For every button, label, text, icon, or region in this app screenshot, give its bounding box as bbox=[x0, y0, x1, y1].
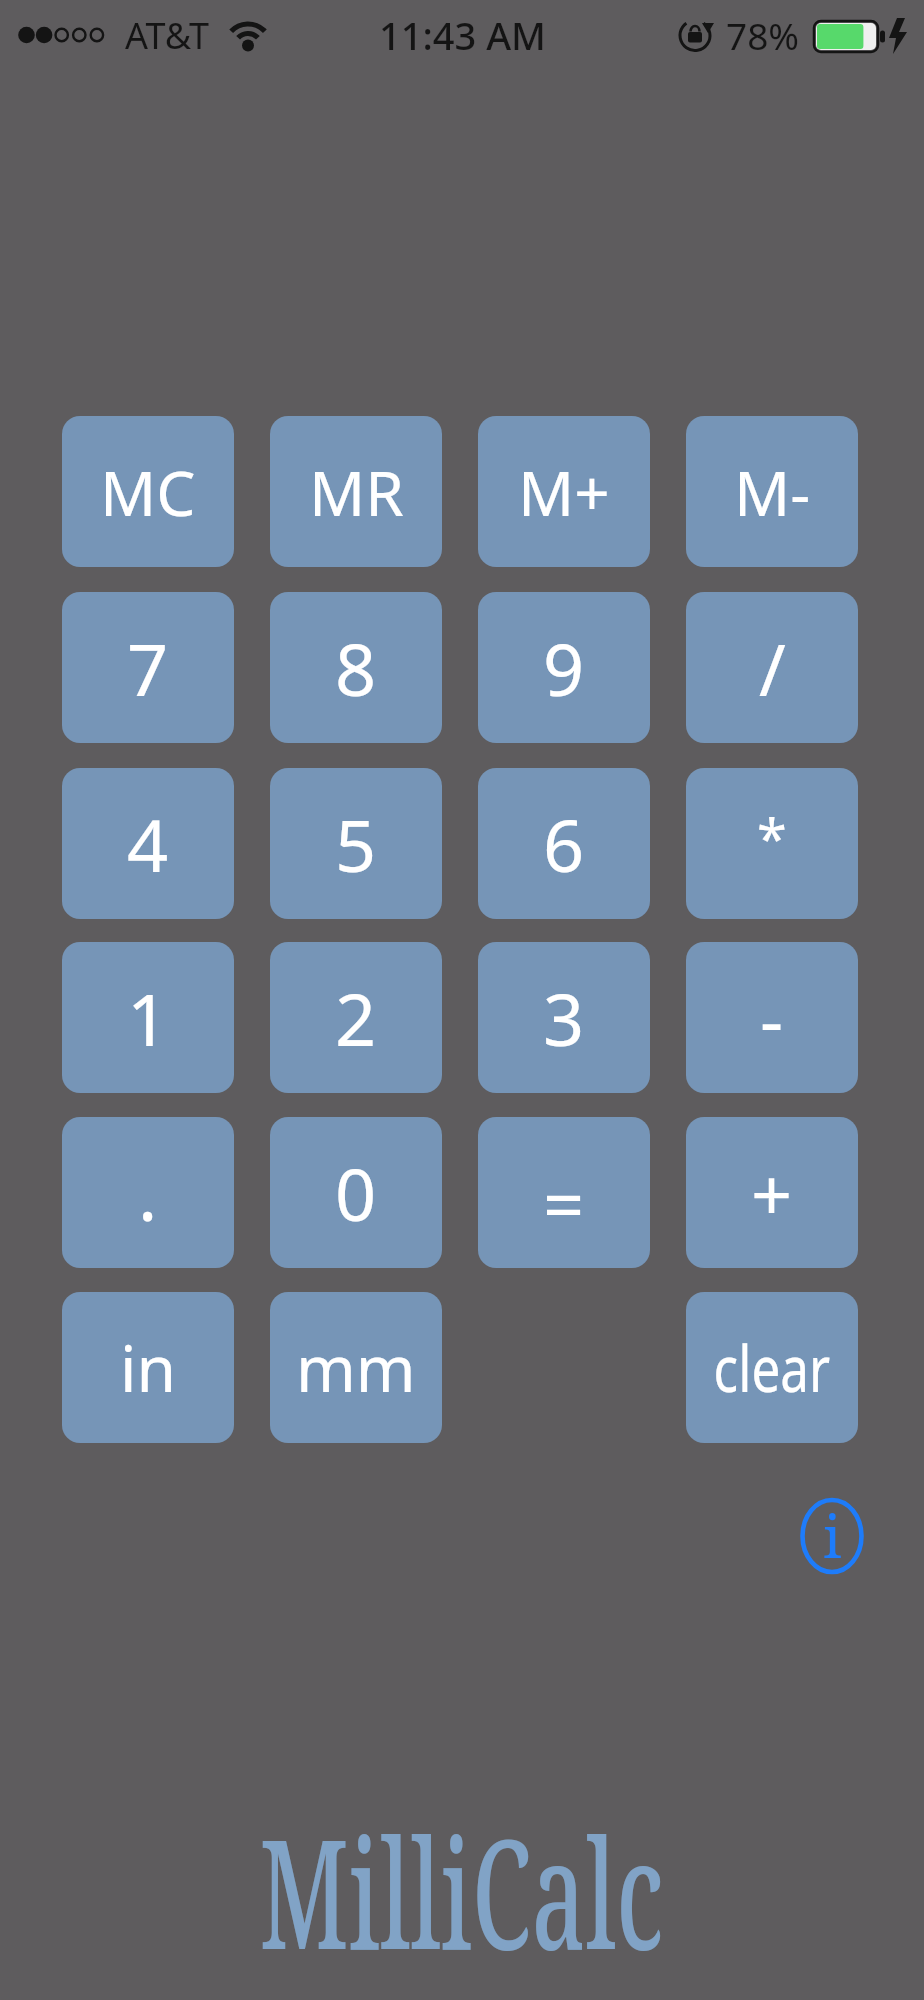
button[interactable]: MR bbox=[270, 416, 442, 567]
staticText: 11:43 AM bbox=[379, 9, 546, 61]
button[interactable]: . bbox=[62, 1117, 234, 1268]
button[interactable]: 8 bbox=[270, 592, 442, 743]
button[interactable]: 6 bbox=[478, 768, 650, 919]
staticText: 6 bbox=[543, 795, 585, 893]
staticText: M- bbox=[734, 450, 811, 534]
button[interactable]: 2 bbox=[270, 942, 442, 1093]
staticText: 7 bbox=[127, 619, 169, 717]
staticText: mm bbox=[296, 1324, 416, 1411]
staticText: 8 bbox=[335, 619, 377, 717]
staticText: 4 bbox=[127, 795, 169, 893]
staticText: in bbox=[120, 1324, 177, 1411]
button[interactable]: 9 bbox=[478, 592, 650, 743]
staticText: 9 bbox=[543, 619, 585, 717]
staticText: 0 bbox=[335, 1144, 377, 1242]
staticText: 3 bbox=[543, 969, 585, 1067]
staticText: . bbox=[138, 1144, 158, 1242]
button[interactable]: i bbox=[787, 1491, 877, 1581]
staticText: AT&T bbox=[125, 11, 209, 60]
staticText: - bbox=[760, 969, 784, 1067]
button[interactable]: in bbox=[62, 1292, 234, 1443]
button[interactable]: 0 bbox=[270, 1117, 442, 1268]
staticText: 5 bbox=[335, 795, 377, 893]
button[interactable]: - bbox=[686, 942, 858, 1093]
button[interactable]: + bbox=[686, 1117, 858, 1268]
staticText: MC bbox=[100, 450, 196, 534]
button[interactable]: clear bbox=[686, 1292, 858, 1443]
button[interactable]: MC bbox=[62, 416, 234, 567]
staticText: MR bbox=[309, 450, 404, 534]
button[interactable]: / bbox=[686, 592, 858, 743]
staticText: M+ bbox=[518, 450, 610, 534]
staticText: 78% bbox=[726, 10, 800, 60]
staticText: i bbox=[823, 1496, 842, 1575]
staticText: + bbox=[751, 1144, 793, 1242]
staticText: MilliCalc bbox=[259, 1787, 664, 1994]
staticText: 1 bbox=[127, 969, 169, 1067]
button[interactable]: 5 bbox=[270, 768, 442, 919]
button[interactable]: = bbox=[478, 1117, 650, 1268]
staticText: = bbox=[543, 1154, 585, 1252]
staticText: 2 bbox=[335, 969, 377, 1067]
button[interactable]: M+ bbox=[478, 416, 650, 567]
staticText: clear bbox=[714, 1324, 830, 1411]
button[interactable]: 4 bbox=[62, 768, 234, 919]
button[interactable]: * bbox=[686, 768, 858, 919]
button[interactable]: 7 bbox=[62, 592, 234, 743]
button[interactable]: M- bbox=[686, 416, 858, 567]
button[interactable]: 1 bbox=[62, 942, 234, 1093]
button[interactable]: mm bbox=[270, 1292, 442, 1443]
staticText: * bbox=[757, 801, 787, 875]
button[interactable]: 3 bbox=[478, 942, 650, 1093]
staticText: / bbox=[759, 619, 786, 717]
